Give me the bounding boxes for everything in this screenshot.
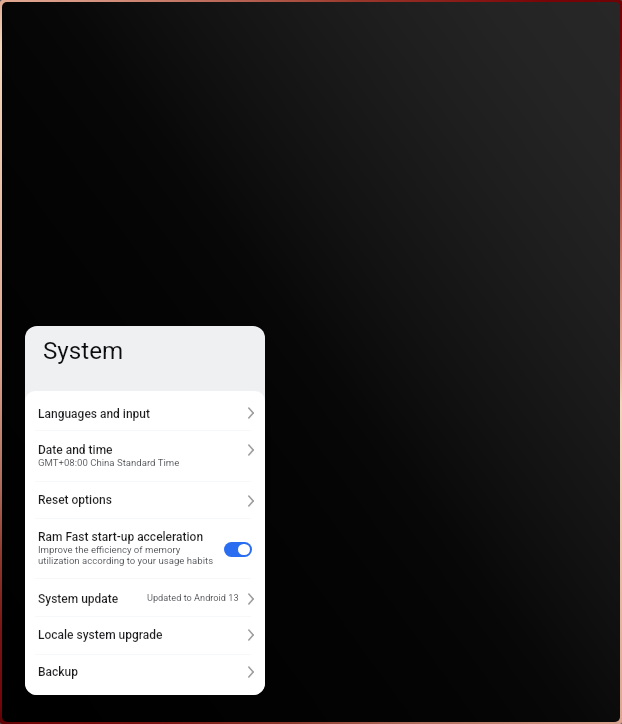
- staticText: GMT+08:00 China Standard Time: [38, 457, 180, 468]
- button[interactable]: Ram Fast start-up acceleration toggle: [224, 542, 252, 557]
- button[interactable]: Languages and input: [25, 391, 265, 430]
- button[interactable]: Backup: [25, 654, 265, 695]
- staticText: Locale system upgrade: [38, 628, 163, 642]
- staticText: System: [43, 337, 124, 365]
- staticText: Backup: [38, 665, 78, 679]
- staticText: Date and time: [38, 443, 113, 457]
- staticText: Ram Fast start-up acceleration: [38, 530, 204, 544]
- button[interactable]: Reset options: [25, 481, 265, 518]
- staticText: Updated to Android 13: [147, 592, 239, 603]
- button[interactable]: Date and time: [25, 430, 265, 481]
- staticText: Improve the efficiency of memory utiliza…: [38, 544, 214, 567]
- button[interactable]: Locale system upgrade: [25, 616, 265, 654]
- button[interactable]: System update: [25, 578, 265, 616]
- staticText: Reset options: [38, 493, 112, 507]
- button[interactable]: Ram Fast start-up acceleration: [25, 518, 265, 579]
- staticText: Languages and input: [38, 407, 151, 421]
- staticText: System update: [38, 592, 119, 606]
